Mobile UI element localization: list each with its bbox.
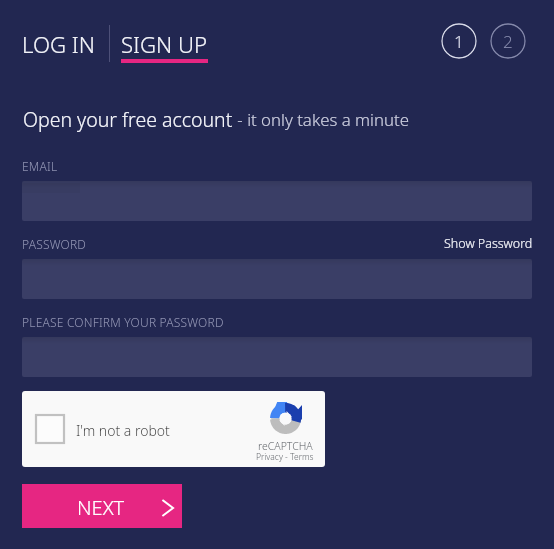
button[interactable]: I'm not a robot checkbox [36,415,64,443]
staticText: PASSWORD [22,236,87,252]
staticText: Privacy - Terms [256,451,314,463]
staticText: 2 [503,30,513,53]
staticText: SIGN UP [121,29,208,59]
staticText: LOG IN [22,29,95,59]
button[interactable]: LOG IN [22,29,95,59]
staticText: 1 [454,30,464,53]
staticText: Open your free account [23,106,233,133]
staticText: Show Password [444,235,533,252]
staticText: EMAIL [22,158,58,174]
button[interactable]: I'm not a robot checkbox [22,391,325,467]
button[interactable]: Show Password [444,235,533,252]
staticText: I'm not a robot [76,421,170,440]
staticText: NEXT [77,494,125,521]
button[interactable]: Step 1 [441,23,477,59]
button[interactable]: Step 2 [490,23,526,59]
button[interactable]: NEXT [22,484,182,528]
staticText: reCAPTCHA [258,439,313,453]
staticText: PLEASE CONFIRM YOUR PASSWORD [22,314,224,330]
button[interactable]: SIGN UP [121,22,208,56]
staticText: - it only takes a minute [233,108,409,131]
